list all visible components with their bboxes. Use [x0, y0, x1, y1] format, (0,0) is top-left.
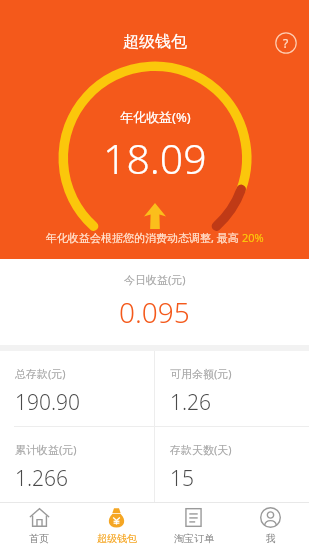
staticText: 累计收益(元) — [15, 442, 77, 457]
button[interactable]: 可用余额(元) — [155, 351, 309, 426]
staticText: 20% — [242, 230, 264, 245]
staticText: 年化收益(%) — [120, 108, 191, 126]
button[interactable]: 存款天数(天) — [155, 427, 309, 502]
staticText: 超级钱包 — [123, 32, 187, 52]
staticText: 18.09 — [103, 130, 207, 186]
button[interactable]: 总存款(元) — [0, 351, 154, 426]
staticText: ? — [283, 35, 289, 51]
button[interactable]: 超级钱包 — [78, 502, 155, 550]
staticText: 190.90 — [15, 388, 81, 417]
staticText: 1.266 — [15, 464, 69, 493]
staticText: 超级钱包 — [97, 532, 137, 545]
staticText: 首页 — [29, 532, 49, 545]
staticText: 淘宝订单 — [174, 532, 214, 545]
button[interactable]: 累计收益(元) — [0, 427, 154, 502]
staticText: 15 — [170, 464, 194, 493]
staticText: 1.26 — [170, 388, 212, 417]
staticText: 可用余额(元) — [170, 366, 232, 381]
staticText: 总存款(元) — [15, 366, 66, 381]
staticText: 0.095 — [119, 293, 190, 331]
button[interactable]: 首页 — [0, 502, 78, 550]
staticText: 年化收益会根据您的消费动态调整, 最高 — [46, 230, 242, 245]
staticText: 今日收益(元) — [124, 272, 186, 287]
button[interactable]: 我 — [232, 502, 309, 550]
staticText: 存款天数(天) — [170, 442, 232, 457]
button[interactable]: 帮助 — [272, 29, 300, 57]
button[interactable]: 淘宝订单 — [155, 502, 232, 550]
staticText: 我 — [266, 532, 276, 545]
